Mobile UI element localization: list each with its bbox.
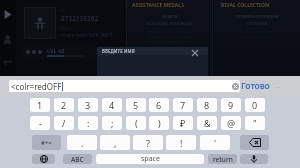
button[interactable]: Weapons [1,56,14,69]
staticText: 9 [228,99,234,111]
staticText: RIVAL COLLECTION [221,2,270,9]
button[interactable]: <colr=redOFF [9,80,240,92]
staticText: 8 [204,99,210,111]
button[interactable]: Play [1,8,14,21]
staticText: ) [158,117,161,129]
button[interactable]: More [276,85,281,90]
staticText: МЕДАЛИ [162,14,178,19]
staticText: ( [135,117,138,129]
button[interactable]: Готово [241,80,270,92]
staticText: return [213,155,233,164]
staticText: #+= [41,139,52,147]
staticText: 1 [37,99,43,111]
button[interactable]: ; [102,116,122,130]
staticText: СОПЕРНИКА [246,21,268,26]
button[interactable]: . [67,135,97,150]
staticText: / [62,117,66,129]
staticText: 0 [252,99,258,111]
staticText: LVL 48 [47,47,65,54]
staticText: NICK [61,26,71,31]
button[interactable]: return [208,154,237,164]
staticText: - [39,117,42,129]
button[interactable]: 7 [173,98,193,112]
button[interactable]: ' [200,135,230,150]
button[interactable]: : [78,116,98,130]
staticText: ABC [71,155,84,164]
staticText: space [141,154,160,164]
staticText: @ [227,117,236,129]
staticText: ! [180,137,183,149]
staticText: & [204,117,211,129]
staticText: ВВЕДИТЕ ИМЯ [102,48,135,54]
staticText: 5 [133,99,139,111]
staticText: : [87,117,90,129]
button[interactable]: Backspace [240,135,269,150]
staticText: <colr=red>OFF-WHT [61,31,113,38]
button[interactable]: Profile [1,33,14,46]
staticText: ₽ [180,117,186,129]
button[interactable]: @ [221,116,241,130]
button[interactable]: ? [133,135,163,150]
button[interactable]: ASSISTANCE MEDALS [127,0,212,168]
button[interactable]: Change language [32,154,55,164]
button[interactable]: Clear text [231,82,239,90]
staticText: Готово [241,80,270,92]
button[interactable]: space [96,154,204,164]
button[interactable]: Close [189,47,200,58]
staticText: ПРЕДМЕТЫ КОЛЛЕКЦИИ [236,14,279,19]
staticText: 8732135262 [61,14,99,23]
staticText: . [81,137,84,149]
button[interactable]: - [30,116,50,130]
staticText: 2 [61,99,67,111]
staticText: ; [111,117,114,129]
button[interactable]: , [100,135,130,150]
staticText: 3 [85,99,91,111]
staticText: ' [214,137,217,149]
button[interactable]: 4 [102,98,122,112]
staticText: " [253,117,257,129]
staticText: 4 [109,99,115,111]
button[interactable]: ) [149,116,169,130]
staticText: 7 [180,99,186,111]
button[interactable]: 8 [197,98,217,112]
button[interactable]: / [54,116,74,130]
button[interactable]: 5 [126,98,146,112]
button[interactable]: RIVAL COLLECTION [214,0,300,168]
staticText: ЗА ПОМОЩЬ ТОВАРИЩАМ [146,21,193,26]
button[interactable]: Dictation [240,154,268,164]
button[interactable]: & [197,116,217,130]
staticText: ID [61,8,66,13]
staticText: ? [146,137,150,149]
button[interactable]: 9 [221,98,241,112]
button[interactable]: 2 [54,98,74,112]
staticText: <colr=redOFF [11,81,62,92]
button[interactable]: 1 [30,98,50,112]
button[interactable]: 6 [149,98,169,112]
button[interactable]: Symbols [32,135,61,150]
button[interactable]: 3 [78,98,98,112]
button[interactable]: ABC [63,154,92,164]
button[interactable]: ! [166,135,196,150]
button[interactable]: ( [126,116,146,130]
button[interactable]: 0 [245,98,265,112]
button[interactable]: ₽ [173,116,193,130]
staticText: ••• [276,85,281,90]
staticText: 6 [156,99,162,111]
staticText: ASSISTANCE MEDALS [132,2,184,9]
staticText: , [114,137,117,149]
button[interactable]: " [245,116,265,130]
